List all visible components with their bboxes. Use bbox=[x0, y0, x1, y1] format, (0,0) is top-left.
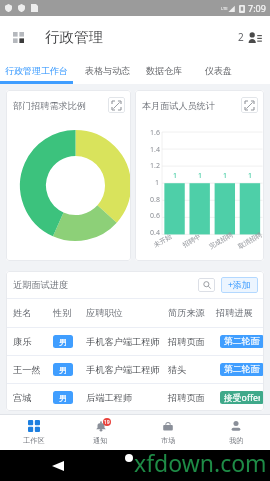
staticText: 1.4 bbox=[150, 145, 160, 155]
staticText: 通知 bbox=[93, 436, 108, 445]
staticText: 我的 bbox=[229, 436, 244, 445]
button[interactable]: 市场 bbox=[134, 415, 202, 450]
staticText: 0.4 bbox=[150, 228, 160, 238]
staticText: 部门招聘需求比例 bbox=[13, 100, 86, 111]
staticText: 1 bbox=[248, 171, 253, 181]
staticText: 手机客户端工程师 bbox=[86, 364, 160, 376]
staticText: 本月面试人员统计 bbox=[142, 100, 215, 111]
staticText: 手机客户端工程师 bbox=[86, 336, 160, 348]
button[interactable]: +添加 bbox=[221, 277, 258, 293]
staticText: 男 bbox=[59, 365, 68, 375]
button[interactable]: 行政管理工作台 bbox=[0, 57, 68, 84]
button[interactable]: Menu bbox=[11, 30, 25, 44]
staticText: 康乐 bbox=[13, 336, 32, 348]
staticText: 行政管理工作台 bbox=[5, 65, 68, 76]
other: Back bbox=[52, 461, 64, 471]
staticText: 7:09 bbox=[248, 2, 266, 14]
button[interactable]: Fullscreen bbox=[108, 97, 125, 113]
staticText: 1 bbox=[198, 171, 203, 181]
button[interactable]: 康乐 bbox=[6, 328, 264, 355]
button[interactable]: 19 bbox=[67, 415, 134, 450]
staticText: 数据仓库 bbox=[146, 65, 182, 76]
button[interactable]: Members bbox=[238, 30, 262, 44]
other: Home bbox=[125, 454, 133, 462]
staticText: 19 bbox=[104, 419, 110, 426]
staticText: 工作区 bbox=[23, 436, 45, 445]
staticText: 取消招聘 bbox=[237, 231, 263, 251]
staticText: 宫城 bbox=[13, 392, 32, 404]
staticText: 招聘页面 bbox=[168, 392, 205, 404]
button[interactable]: 数据仓库 bbox=[130, 57, 182, 84]
staticText: 性别 bbox=[53, 307, 72, 319]
staticText: 男 bbox=[59, 393, 68, 403]
staticText: 仪表盘 bbox=[205, 65, 232, 76]
staticText: 简历来源 bbox=[168, 307, 205, 319]
staticText: LTE bbox=[221, 6, 228, 11]
staticText: xfdown.com bbox=[134, 447, 267, 478]
staticText: 王一然 bbox=[13, 364, 41, 376]
staticText: 市场 bbox=[161, 436, 176, 445]
staticText: 表格与动态 bbox=[85, 65, 130, 76]
staticText: 后端工程师 bbox=[86, 392, 132, 404]
staticText: 姓名 bbox=[13, 307, 32, 319]
staticText: 0.8 bbox=[150, 195, 160, 205]
button[interactable]: Fullscreen bbox=[241, 97, 258, 113]
button[interactable]: 仪表盘 bbox=[182, 57, 232, 84]
button[interactable]: 我的 bbox=[202, 415, 270, 450]
staticText: 1 bbox=[173, 171, 178, 181]
button[interactable]: 表格与动态 bbox=[68, 57, 130, 84]
staticText: 男 bbox=[59, 337, 68, 347]
button[interactable]: 王一然 bbox=[6, 356, 264, 383]
staticText: 未开始 bbox=[152, 232, 174, 249]
staticText: 1 bbox=[223, 171, 228, 181]
staticText: 1.6 bbox=[150, 128, 160, 138]
staticText: 2 bbox=[238, 30, 244, 44]
staticText: 1.2 bbox=[150, 161, 160, 171]
staticText: 完成招聘 bbox=[208, 231, 234, 251]
staticText: 近期面试进度 bbox=[13, 279, 69, 291]
staticText: 招聘页面 bbox=[168, 336, 205, 348]
staticText: +添加 bbox=[228, 279, 251, 291]
button[interactable]: 宫城 bbox=[6, 384, 264, 411]
staticText: 1 bbox=[155, 178, 160, 188]
staticText: 应聘职位 bbox=[86, 307, 123, 319]
staticText: 行政管理 bbox=[45, 28, 103, 46]
staticText: 招聘中 bbox=[181, 232, 203, 249]
staticText: 招聘进展 bbox=[216, 307, 253, 319]
button[interactable]: 工作区 bbox=[0, 415, 67, 450]
staticText: 第二轮面试 bbox=[224, 336, 260, 347]
staticText: 接受offer bbox=[224, 392, 260, 404]
button[interactable]: Search bbox=[198, 278, 215, 292]
staticText: 第二轮面试 bbox=[224, 364, 260, 375]
staticText: 猎头 bbox=[168, 364, 187, 376]
staticText: 0.6 bbox=[150, 211, 160, 221]
